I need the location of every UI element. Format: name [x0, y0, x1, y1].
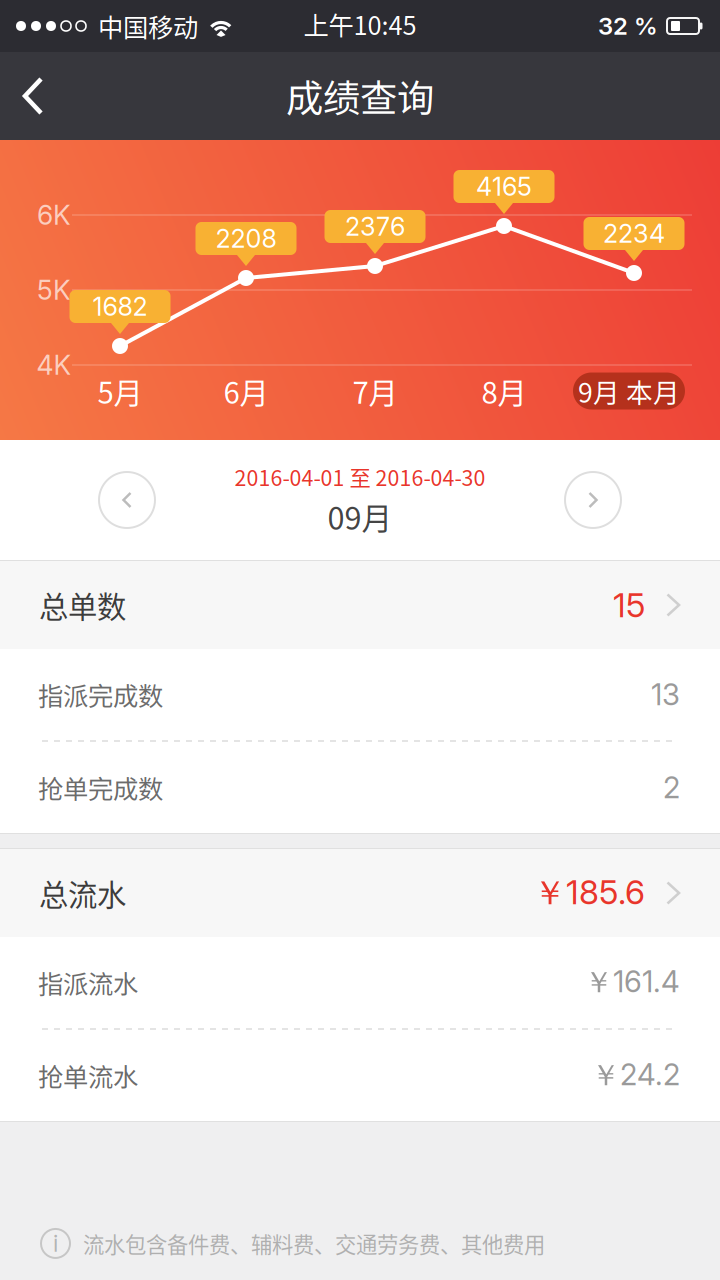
staticText: 09月: [327, 494, 392, 539]
staticText: 2016-04-01 至 2016-04-30: [234, 461, 485, 492]
staticText: 指派流水: [38, 964, 138, 1001]
staticText: 8月: [481, 370, 526, 412]
staticText: 流水包含备件费、辅料费、交通劳务费、其他费用: [83, 1228, 545, 1259]
staticText: 1682: [92, 291, 147, 322]
staticText: 总单数: [39, 584, 126, 626]
staticText: ￥24.2: [591, 1057, 680, 1094]
staticText: 抢单完成数: [38, 769, 163, 806]
staticText: 7月: [352, 370, 397, 412]
staticText: 4165: [476, 171, 532, 202]
staticText: 15: [613, 585, 645, 625]
staticText: 指派完成数: [38, 676, 163, 713]
staticText: 成绩查询: [286, 69, 434, 123]
button[interactable]: Previous month: [99, 472, 155, 528]
staticText: 上午10:45: [303, 6, 416, 42]
staticText: 5月: [97, 370, 142, 412]
staticText: 中国移动: [98, 8, 198, 44]
staticText: 32 %: [598, 11, 658, 40]
staticText: 6月: [223, 370, 268, 412]
staticText: 2376: [345, 211, 405, 242]
staticText: i: [53, 1230, 58, 1257]
staticText: 抢单流水: [38, 1057, 138, 1094]
staticText: 4K: [36, 349, 71, 381]
staticText: 2: [663, 770, 680, 805]
staticText: ￥161.4: [584, 964, 680, 1001]
staticText: 6K: [37, 199, 71, 231]
staticText: ￥185.6: [533, 872, 645, 914]
staticText: 总流水: [39, 872, 126, 914]
button[interactable]: Next month: [565, 472, 621, 528]
button[interactable]: 总单数: [0, 561, 720, 649]
staticText: 13: [651, 677, 680, 712]
staticText: 9月 本月: [578, 372, 680, 410]
staticText: 2234: [603, 218, 665, 249]
button[interactable]: Back: [0, 52, 62, 140]
button[interactable]: 总流水: [0, 849, 720, 937]
staticText: 5K: [37, 274, 71, 306]
staticText: 2208: [215, 223, 276, 254]
